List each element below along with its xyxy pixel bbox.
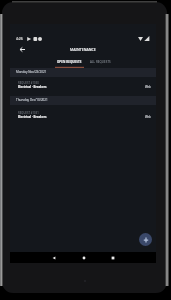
staticText: Electrical · Breakers xyxy=(18,115,47,119)
button[interactable]: Recent apps xyxy=(109,254,116,261)
staticText: Web xyxy=(145,85,151,89)
button[interactable]: Home xyxy=(80,254,87,261)
button[interactable]: REQUEST #1030 xyxy=(10,77,156,97)
staticText: OPEN REQUESTS xyxy=(57,60,82,64)
staticText: 4:26 xyxy=(16,36,23,41)
button[interactable]: Back xyxy=(17,44,28,55)
staticText: MAINTENANCE xyxy=(70,47,96,52)
button[interactable]: OPEN REQUESTS xyxy=(55,55,84,67)
button[interactable]: REQUEST #1031 xyxy=(10,107,156,127)
staticText: REQUEST #1030 xyxy=(18,81,39,85)
staticText: ALL REQUESTS xyxy=(90,60,111,64)
staticText: Electrical · Breakers xyxy=(18,85,47,89)
staticText: REQUEST #1031 xyxy=(18,111,39,115)
staticText: Thursday Dec/10/2021 xyxy=(16,98,48,102)
staticText: Web xyxy=(145,115,151,119)
staticText: Monday Nov/23/2021 xyxy=(16,70,47,74)
button[interactable]: ALL REQUESTS xyxy=(88,55,112,67)
button[interactable]: Back xyxy=(50,254,57,261)
button[interactable]: Add request xyxy=(139,233,152,246)
